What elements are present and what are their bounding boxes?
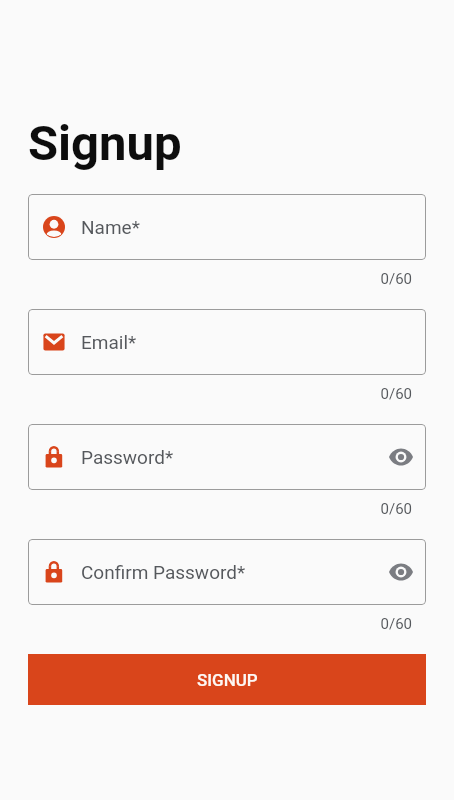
staticText: Signup <box>28 115 182 172</box>
staticText: 0/60 <box>28 270 412 288</box>
staticText: 0/60 <box>28 385 412 403</box>
staticText: 0/60 <box>28 615 412 633</box>
button[interactable]: Password* <box>28 424 426 490</box>
staticText: 0/60 <box>28 500 412 518</box>
button[interactable]: Show password <box>389 445 413 469</box>
staticText: Password* <box>81 446 174 468</box>
button[interactable]: Show password <box>389 560 413 584</box>
button[interactable]: Name* <box>28 194 426 260</box>
staticText: Name* <box>81 216 140 238</box>
staticText: Email* <box>81 331 137 353</box>
staticText: SIGNUP <box>197 670 258 690</box>
staticText: Confirm Password* <box>81 561 246 583</box>
button[interactable]: Email* <box>28 309 426 375</box>
button[interactable]: Confirm Password* <box>28 539 426 605</box>
button[interactable]: SIGNUP <box>28 654 426 705</box>
